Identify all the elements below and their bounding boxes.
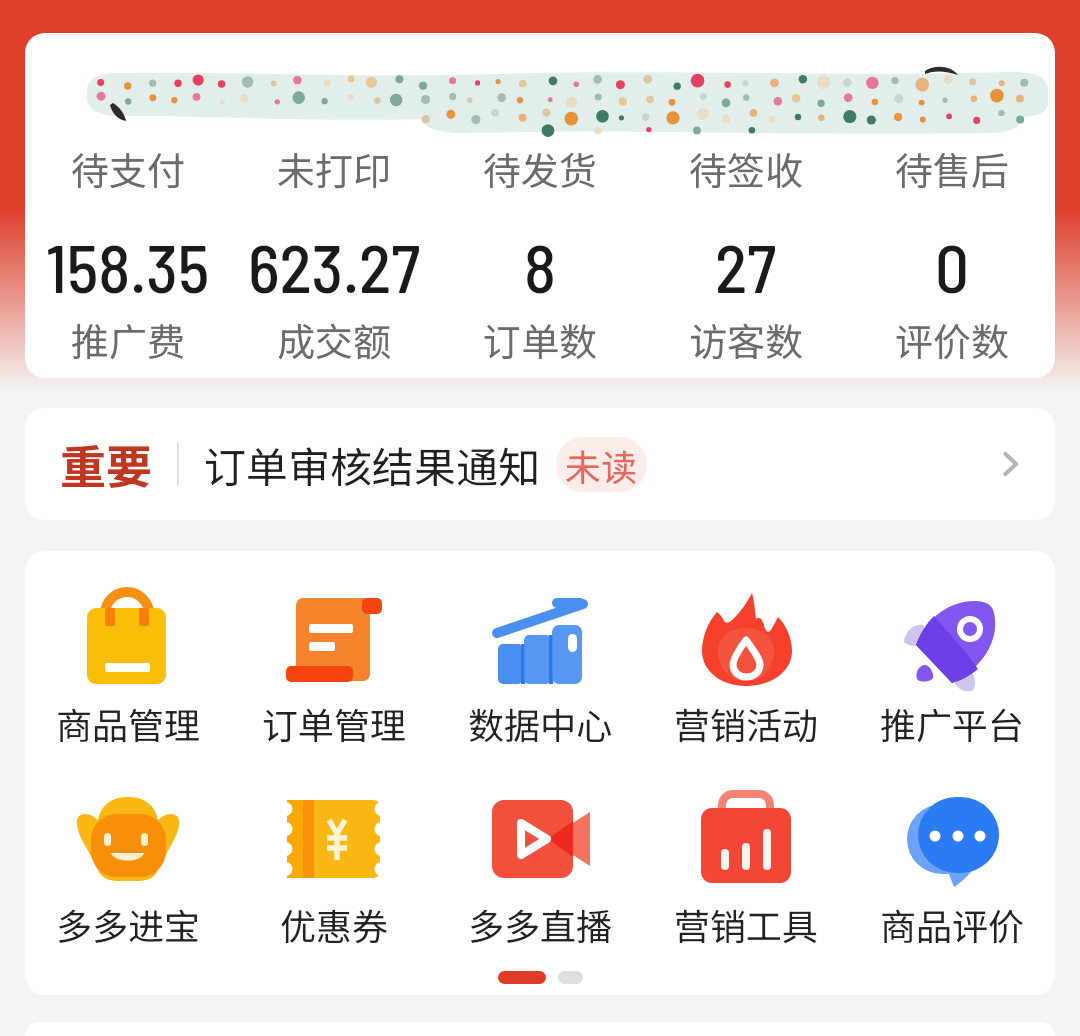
staticText: 0: [935, 226, 969, 306]
staticText: 待支付: [71, 141, 186, 196]
button[interactable]: 优惠券: [231, 790, 437, 950]
staticText: 待售后: [895, 141, 1010, 196]
button[interactable]: 8: [437, 226, 643, 367]
button[interactable]: 重要: [25, 408, 1055, 520]
button[interactable]: 待售后: [849, 33, 1055, 196]
button[interactable]: 营销活动: [643, 589, 849, 749]
staticText: 数据中心: [468, 697, 613, 749]
staticText: 未读: [565, 439, 638, 491]
staticText: 商品评价: [880, 898, 1025, 950]
button[interactable]: 营销工具: [643, 790, 849, 950]
button[interactable]: 0: [849, 226, 1055, 367]
staticText: 8: [524, 226, 557, 306]
staticText: 营销工具: [674, 898, 819, 950]
button[interactable]: 数据中心: [437, 589, 643, 749]
staticText: 多多直播: [468, 898, 613, 950]
staticText: 访客数: [689, 312, 804, 367]
button[interactable]: 订单管理: [231, 589, 437, 749]
button[interactable]: 27: [643, 226, 849, 367]
other: More: [993, 447, 1027, 481]
button[interactable]: 多多进宝: [25, 790, 231, 950]
staticText: 订单审核结果通知: [204, 434, 541, 495]
button[interactable]: 待发货: [437, 33, 643, 196]
button[interactable]: 多多直播: [437, 790, 643, 950]
staticText: 重要: [60, 431, 152, 498]
button[interactable]: 推广平台: [849, 589, 1055, 749]
button[interactable]: 商品管理: [25, 589, 231, 749]
staticText: 未打印: [277, 141, 392, 196]
button[interactable]: 待签收: [643, 33, 849, 196]
staticText: 推广平台: [880, 697, 1025, 749]
button[interactable]: 623.27: [231, 226, 437, 367]
staticText: 多多进宝: [56, 898, 201, 950]
button[interactable]: 未打印: [231, 33, 437, 196]
staticText: 158.35: [46, 226, 210, 306]
staticText: 推广费: [71, 312, 186, 367]
staticText: 评价数: [895, 312, 1010, 367]
button[interactable]: 商品评价: [849, 790, 1055, 950]
staticText: 27: [715, 226, 777, 306]
staticText: 商品管理: [56, 697, 201, 749]
staticText: 订单管理: [262, 697, 407, 749]
button[interactable]: 待支付: [25, 33, 231, 196]
staticText: 成交额: [277, 312, 392, 367]
staticText: 订单数: [483, 312, 598, 367]
staticText: 营销活动: [674, 697, 819, 749]
staticText: 优惠券: [280, 898, 389, 950]
button[interactable]: 158.35: [25, 226, 231, 367]
staticText: 待发货: [483, 141, 598, 196]
staticText: 待签收: [689, 141, 804, 196]
staticText: 623.27: [248, 226, 421, 306]
